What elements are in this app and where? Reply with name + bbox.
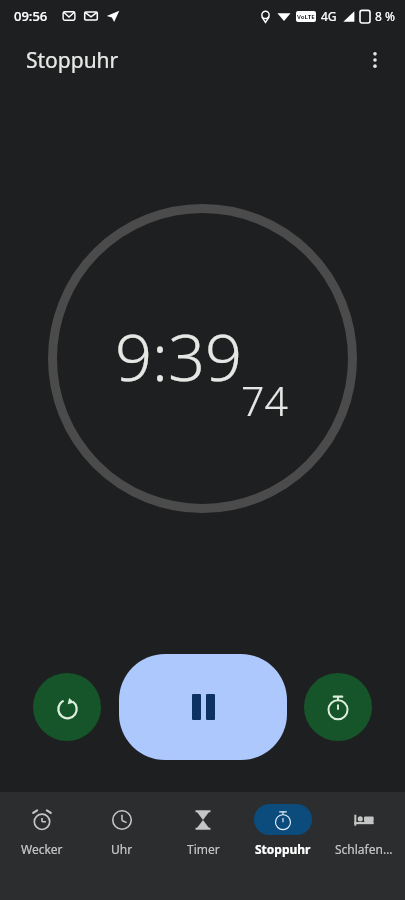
button[interactable]: Schlafen… — [325, 800, 403, 857]
staticText: VoLTE — [297, 13, 315, 21]
staticText: Stoppuhr — [255, 841, 311, 857]
staticText: 74 — [241, 372, 288, 428]
button[interactable]: More options — [353, 38, 397, 82]
staticText: 8 % — [375, 8, 395, 24]
staticText: 9:39 — [115, 312, 243, 401]
button[interactable]: Timer — [164, 800, 242, 857]
button[interactable]: Wecker — [3, 800, 81, 857]
button[interactable]: Stoppuhr — [244, 800, 322, 857]
button[interactable]: Pause — [119, 654, 287, 760]
staticText: Timer — [187, 841, 220, 857]
button[interactable]: Lap — [304, 673, 372, 741]
staticText: 4G — [321, 8, 337, 24]
staticText: Uhr — [111, 841, 133, 857]
button[interactable]: Uhr — [83, 800, 161, 857]
staticText: 09:56 — [14, 7, 48, 25]
button[interactable]: Reset — [33, 673, 101, 741]
staticText: Wecker — [21, 841, 63, 857]
staticText: Schlafen… — [335, 841, 393, 857]
staticText: Stoppuhr — [26, 46, 119, 75]
